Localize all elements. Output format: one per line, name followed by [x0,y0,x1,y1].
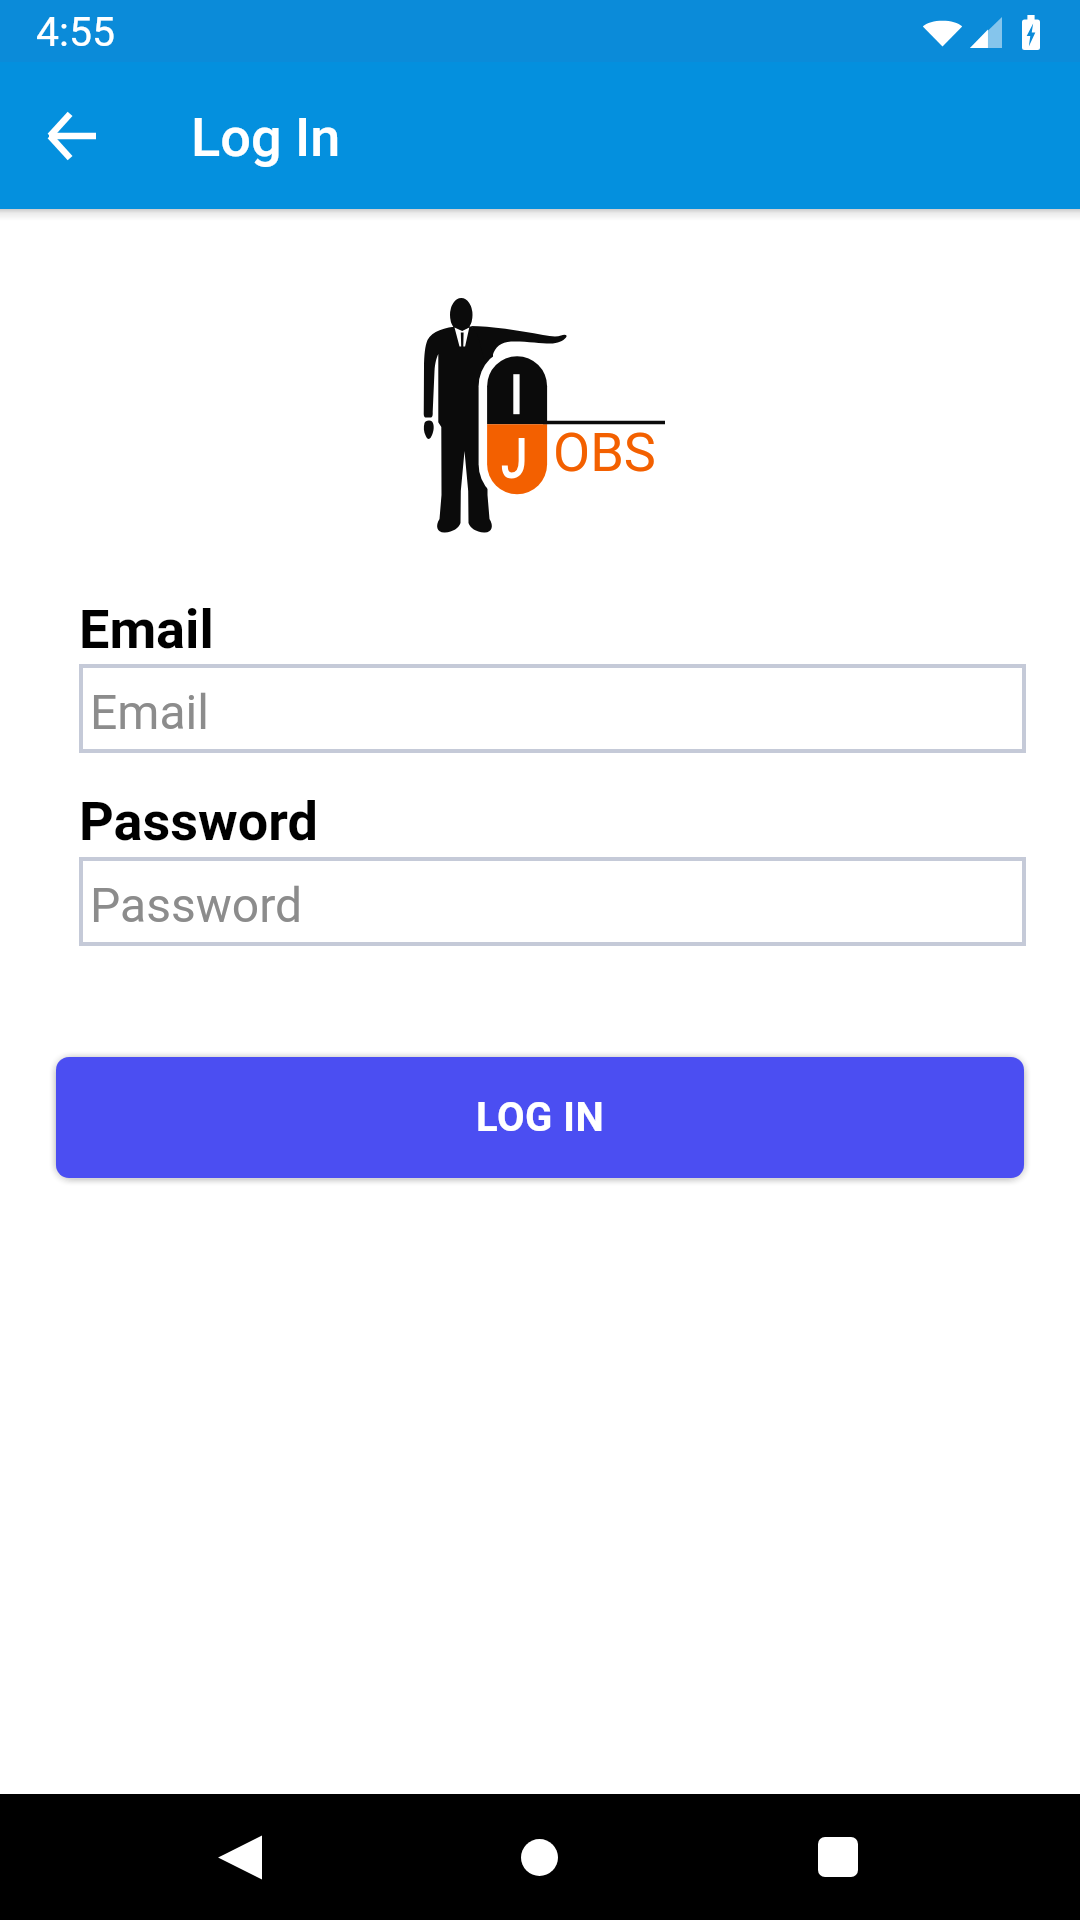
button[interactable]: Email [79,664,1026,753]
staticText: LOG IN [476,1094,605,1141]
staticText: Password [79,790,318,853]
staticText: Email [90,684,209,740]
button[interactable]: Recent apps [783,1802,893,1912]
staticText: Log In [191,106,341,169]
button[interactable]: Navigate up [24,88,120,184]
button[interactable]: LOG IN [56,1057,1024,1178]
button[interactable]: Back [185,1802,295,1912]
staticText: Email [79,598,214,661]
button[interactable]: Password [79,857,1026,946]
button[interactable]: Home [484,1802,594,1912]
staticText: OBS [553,421,656,484]
staticText: 4:55 [36,8,116,56]
staticText: Password [90,877,303,933]
